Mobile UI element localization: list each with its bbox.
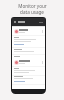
staticText: data usage — [20, 9, 44, 15]
staticText: Monitor your — [18, 3, 47, 9]
button[interactable]: Menu — [12, 18, 45, 26]
